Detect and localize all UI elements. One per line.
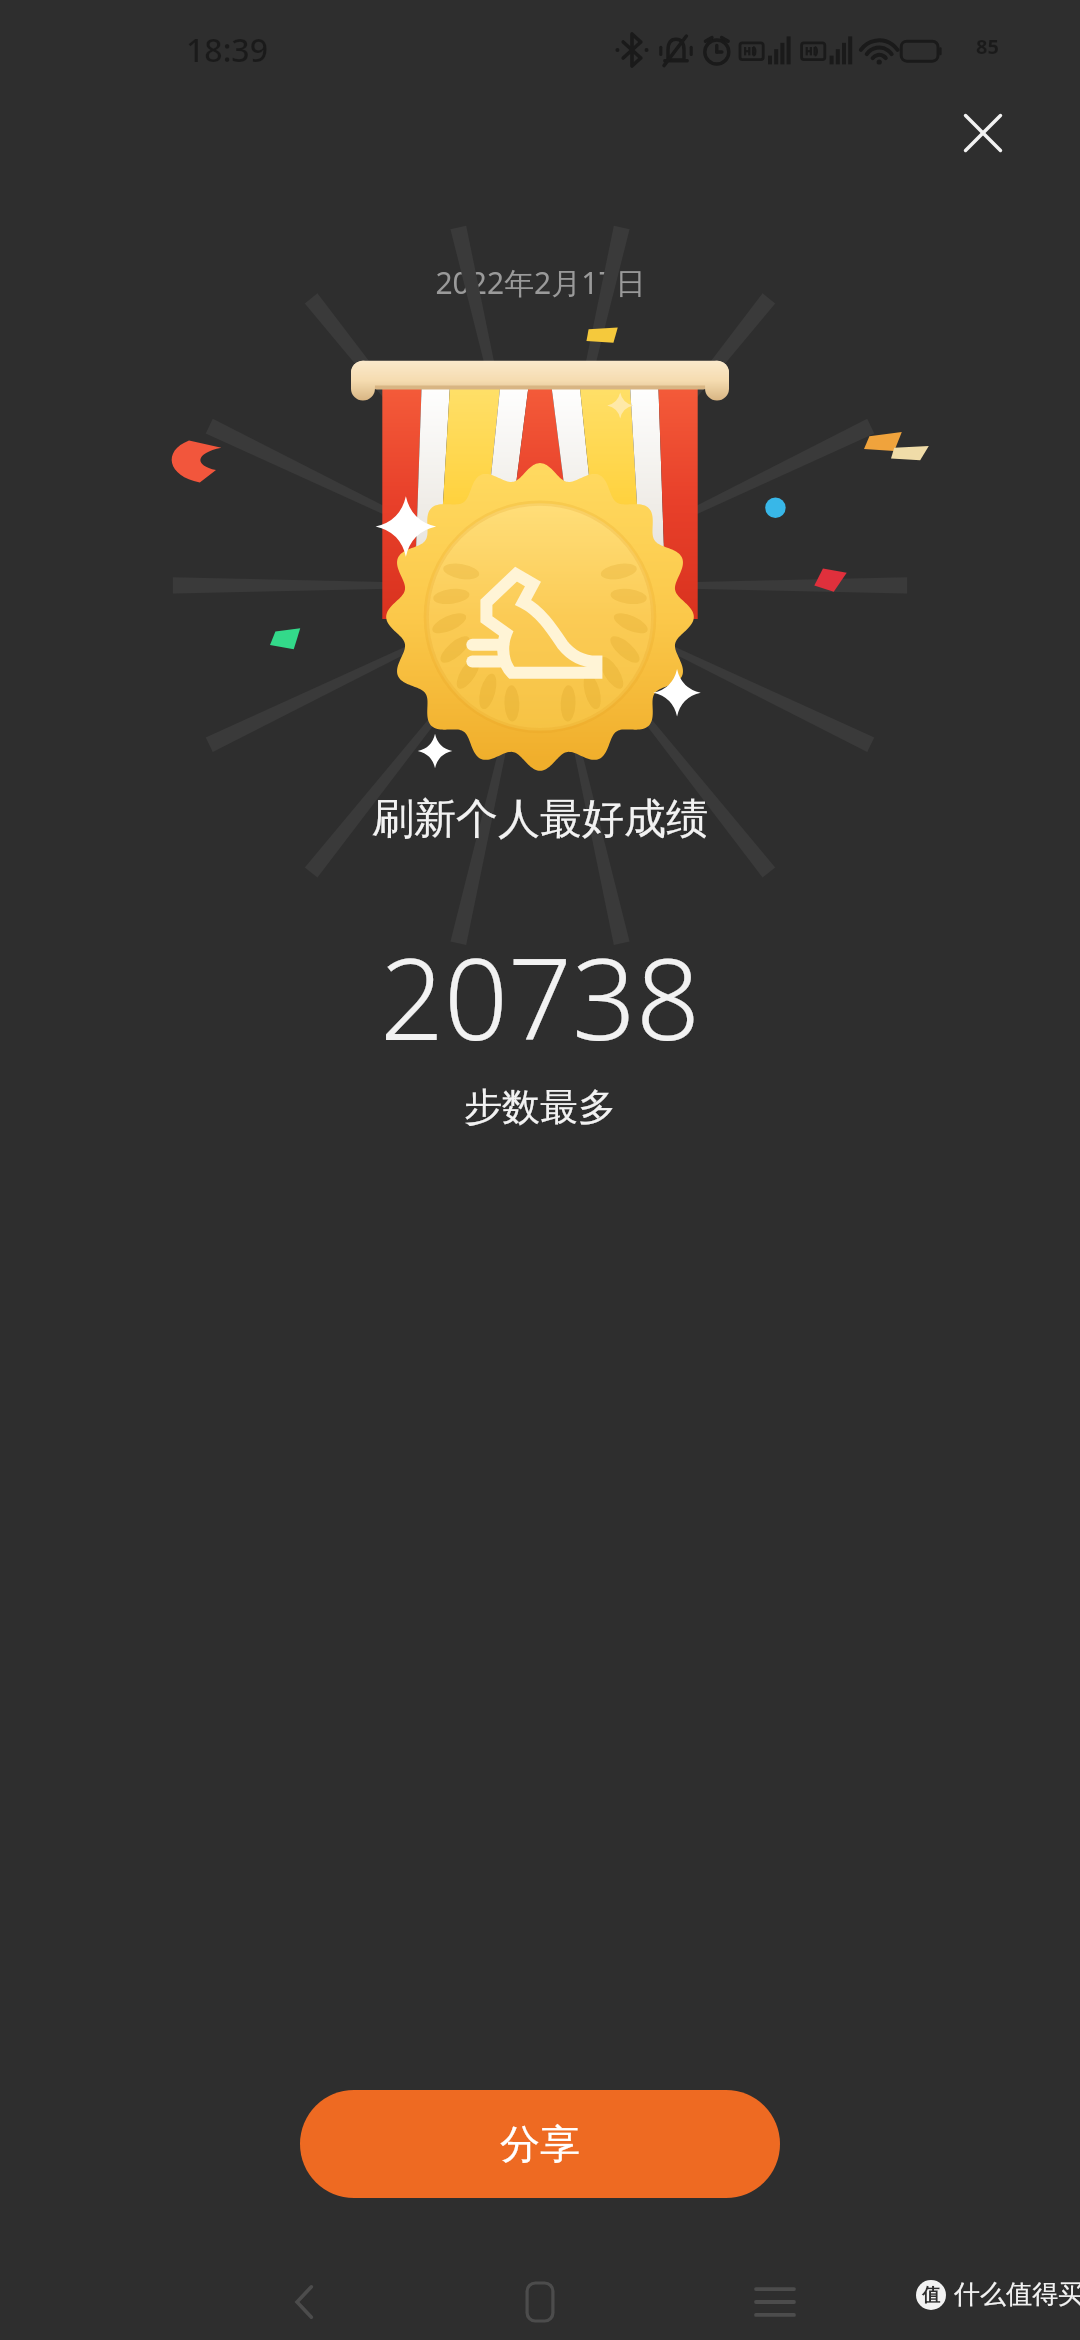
staticText: 分享 [500, 2119, 580, 2169]
button[interactable]: Close [928, 78, 1038, 188]
button[interactable]: Back [250, 2254, 360, 2340]
staticText: 85 [976, 33, 999, 60]
button[interactable]: Recent apps [720, 2254, 830, 2340]
staticText: 值 [922, 2284, 940, 2307]
button[interactable]: Home [485, 2254, 595, 2340]
staticText: 18:39 [186, 28, 268, 72]
staticText: 什么值得买 [954, 2278, 1080, 2311]
staticText: 2022年2月17日 [435, 262, 646, 303]
staticText: 刷新个人最好成绩 [372, 793, 708, 846]
staticText: 20738 [380, 920, 700, 1073]
button[interactable]: 分享 [300, 2090, 780, 2198]
staticText: 步数最多 [464, 1083, 616, 1131]
